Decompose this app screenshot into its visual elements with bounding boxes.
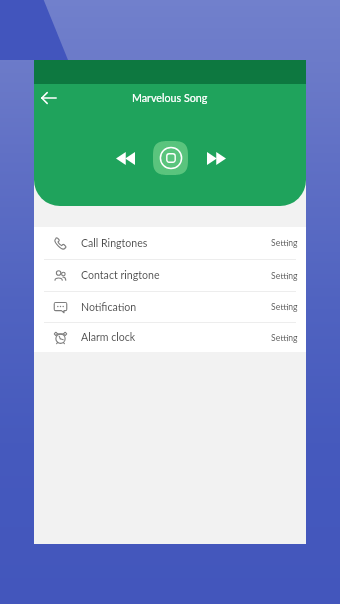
- button[interactable]: Call Ringtones: [34, 227, 306, 259]
- button[interactable]: Contact ringtone: [34, 260, 306, 291]
- staticText: Alarm clock: [81, 331, 136, 344]
- staticText: Setting: [271, 333, 298, 343]
- button[interactable]: Forward: [196, 138, 236, 178]
- staticText: Setting: [271, 271, 298, 281]
- staticText: Setting: [271, 238, 298, 248]
- staticText: Marvelous Song: [132, 91, 208, 104]
- button[interactable]: Notification: [34, 292, 306, 322]
- staticText: Setting: [271, 302, 298, 312]
- button[interactable]: Alarm clock: [34, 323, 306, 352]
- staticText: Notification: [81, 301, 137, 314]
- button[interactable]: Back: [34, 84, 64, 113]
- button[interactable]: Stop: [153, 141, 188, 175]
- staticText: Contact ringtone: [81, 269, 160, 282]
- staticText: Call Ringtones: [81, 237, 148, 250]
- button[interactable]: Rewind: [105, 138, 145, 178]
